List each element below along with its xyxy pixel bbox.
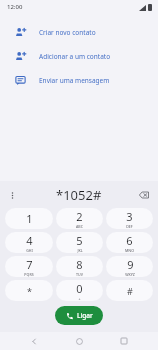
- staticText: 5: [76, 233, 83, 248]
- button[interactable]: Home: [68, 332, 90, 350]
- button[interactable]: 8: [56, 256, 103, 277]
- button[interactable]: 9: [106, 256, 153, 277]
- button[interactable]: Backspace: [135, 186, 153, 204]
- staticText: #: [127, 285, 133, 297]
- button[interactable]: More options: [4, 187, 20, 203]
- staticText: Adicionar a um contato: [39, 52, 111, 61]
- button[interactable]: Recent apps: [113, 332, 135, 350]
- staticText: Criar novo contato: [39, 28, 96, 37]
- staticText: *: [27, 285, 32, 297]
- staticText: 4: [26, 233, 33, 248]
- button[interactable]: 7: [5, 256, 53, 277]
- staticText: DEF: [126, 224, 133, 229]
- staticText: ABC: [76, 224, 83, 229]
- button[interactable]: 1: [5, 208, 53, 229]
- button[interactable]: 3: [106, 208, 153, 229]
- button[interactable]: 5: [56, 232, 103, 253]
- button[interactable]: Enviar uma mensagem: [0, 68, 158, 92]
- button[interactable]: Criar novo contato: [0, 20, 158, 44]
- staticText: *1052#: [56, 186, 102, 204]
- staticText: Enviar uma mensagem: [39, 76, 110, 85]
- staticText: +: [78, 296, 81, 301]
- staticText: 6: [126, 233, 133, 248]
- staticText: 12:00: [7, 3, 23, 11]
- button[interactable]: *: [5, 280, 53, 301]
- staticText: 8: [76, 257, 83, 272]
- staticText: PQRS: [24, 272, 34, 277]
- staticText: 9: [127, 257, 134, 272]
- button[interactable]: Ligar: [55, 306, 103, 325]
- staticText: Ligar: [77, 311, 93, 320]
- staticText: 1: [26, 211, 33, 226]
- button[interactable]: #: [106, 280, 153, 301]
- button[interactable]: Adicionar a um contato: [0, 44, 158, 68]
- staticText: TUV: [76, 272, 83, 277]
- button[interactable]: 4: [5, 232, 53, 253]
- button[interactable]: 6: [106, 232, 153, 253]
- staticText: 0: [76, 281, 83, 296]
- staticText: JKL: [77, 248, 83, 253]
- button[interactable]: 2: [56, 208, 103, 229]
- staticText: 2: [76, 209, 83, 224]
- button[interactable]: Back: [23, 332, 45, 350]
- staticText: 3: [126, 209, 133, 224]
- button[interactable]: 0: [56, 280, 103, 301]
- staticText: WXYZ: [125, 272, 135, 277]
- staticText: 7: [26, 257, 33, 272]
- staticText: MNO: [125, 248, 134, 253]
- staticText: GHI: [26, 248, 33, 253]
